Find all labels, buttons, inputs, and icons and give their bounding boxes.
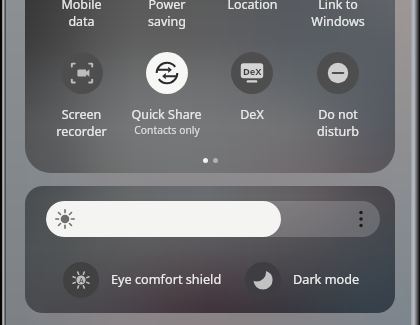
other: Screen recorder [61, 52, 103, 94]
button[interactable]: Quick Share [124, 52, 209, 137]
button[interactable]: Dark mode [245, 262, 360, 298]
other: DeX [231, 52, 273, 94]
button[interactable]: Link to Windows [295, 0, 381, 30]
staticText: Contacts only [134, 123, 200, 137]
staticText: DeX [243, 65, 262, 78]
button[interactable]: Mobile data [39, 0, 124, 30]
other: Dark mode [245, 262, 281, 298]
staticText: Power saving [148, 0, 186, 30]
button[interactable]: Power saving [124, 0, 209, 30]
staticText: Location [227, 0, 278, 13]
staticText: Link to Windows [311, 0, 365, 30]
button[interactable]: DeX [209, 52, 295, 123]
staticText: DeX [240, 106, 264, 123]
button[interactable]: Do not disturb [295, 52, 381, 140]
button[interactable]: Screen recorder [39, 52, 124, 140]
staticText: Dark mode [293, 270, 360, 287]
button[interactable]: Brightness [46, 201, 380, 237]
staticText: Quick Share [131, 106, 202, 123]
staticText: Mobile data [61, 0, 102, 30]
staticText: Eye comfort shield [111, 270, 222, 287]
staticText: A [79, 275, 84, 285]
other: Quick Share [146, 52, 188, 94]
staticText: Do not disturb [317, 106, 359, 140]
other: Eye comfort shield [63, 262, 99, 298]
button[interactable]: Location [209, 0, 295, 13]
button[interactable]: Eye comfort shield [63, 262, 222, 298]
other: Do not disturb [317, 52, 359, 94]
staticText: Screen recorder [56, 106, 107, 140]
